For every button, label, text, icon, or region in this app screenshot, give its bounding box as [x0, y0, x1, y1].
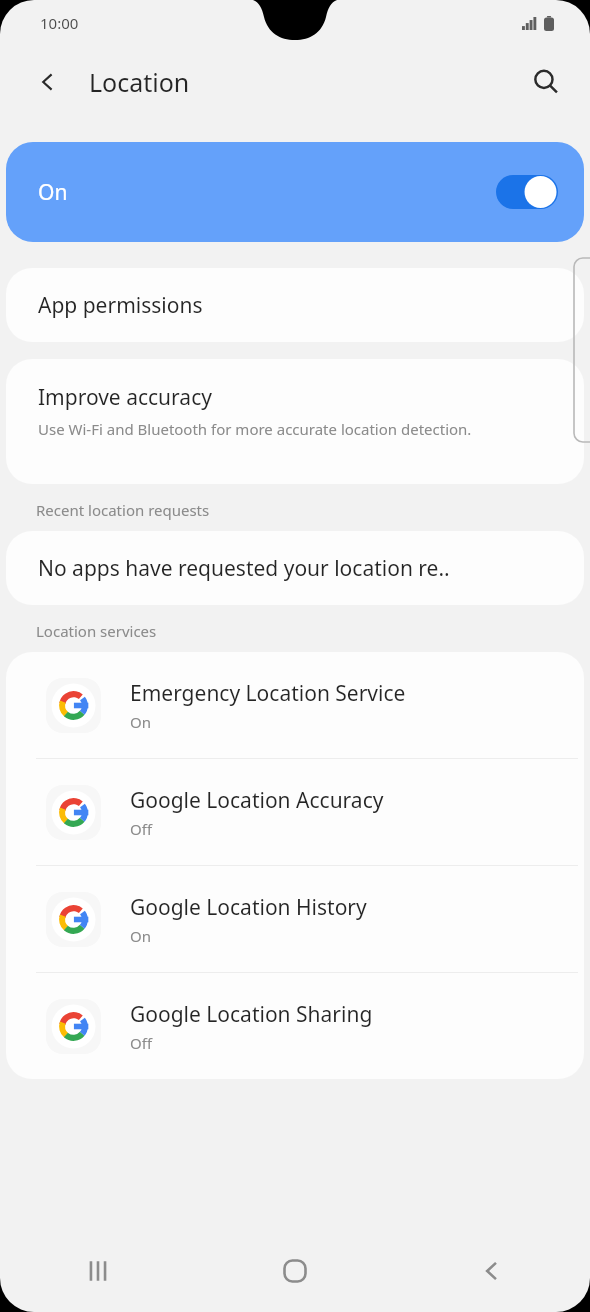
- staticText: Recent location requests: [36, 500, 210, 520]
- staticText: On: [38, 178, 68, 207]
- staticText: Emergency Location Service: [130, 679, 406, 708]
- staticText: Location services: [36, 621, 157, 641]
- button[interactable]: Back: [393, 1230, 590, 1312]
- staticText: Google Location History: [130, 893, 367, 922]
- staticText: Location: [89, 65, 190, 99]
- staticText: Improve accuracy: [38, 383, 212, 412]
- button[interactable]: Home: [196, 1230, 393, 1312]
- staticText: Off: [130, 1033, 153, 1053]
- staticText: Use Wi-Fi and Bluetooth for more accurat…: [38, 419, 472, 439]
- button[interactable]: Recents: [0, 1230, 196, 1312]
- button[interactable]: Google Location Accuracy: [6, 759, 584, 865]
- button[interactable]: Google Location History: [6, 866, 584, 972]
- button[interactable]: App permissions: [6, 268, 584, 342]
- button[interactable]: Improve accuracy: [6, 359, 584, 484]
- button[interactable]: No apps have requested your location re.…: [6, 531, 584, 605]
- button[interactable]: Back: [24, 58, 72, 106]
- button[interactable]: Google Location Sharing: [6, 973, 584, 1079]
- button[interactable]: Emergency Location Service: [6, 652, 584, 758]
- staticText: App permissions: [38, 291, 203, 320]
- staticText: Off: [130, 819, 153, 839]
- staticText: No apps have requested your location re.…: [38, 554, 450, 583]
- staticText: On: [130, 926, 151, 946]
- button[interactable]: Search: [520, 56, 572, 108]
- staticText: 10:00: [40, 13, 79, 33]
- button[interactable]: On: [6, 142, 584, 242]
- staticText: Google Location Accuracy: [130, 786, 384, 815]
- staticText: Google Location Sharing: [130, 1000, 373, 1029]
- staticText: On: [130, 712, 151, 732]
